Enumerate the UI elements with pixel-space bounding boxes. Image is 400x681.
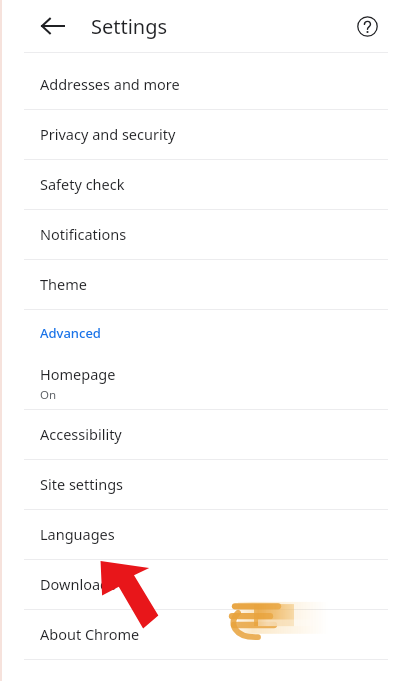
button[interactable]: Homepage: [0, 357, 400, 409]
staticText: Homepage: [40, 364, 116, 384]
staticText: Notifications: [40, 224, 127, 244]
button[interactable]: About Chrome: [0, 609, 400, 659]
button[interactable]: Privacy and security: [0, 109, 400, 159]
staticText: Theme: [40, 274, 87, 294]
button[interactable]: Notifications: [0, 209, 400, 259]
staticText: Languages: [40, 524, 115, 544]
button[interactable]: Languages: [0, 509, 400, 559]
button[interactable]: Site settings: [0, 459, 400, 509]
staticText: On: [40, 387, 57, 403]
staticText: Site settings: [40, 474, 124, 494]
button[interactable]: Safety check: [0, 159, 400, 209]
staticText: Accessibility: [40, 424, 122, 444]
button[interactable]: Help: [348, 7, 386, 45]
staticText: Advanced: [40, 324, 101, 342]
staticText: Addresses and more: [40, 74, 180, 94]
button[interactable]: Downloads: [0, 559, 400, 609]
staticText: About Chrome: [40, 624, 140, 644]
staticText: Privacy and security: [40, 124, 176, 144]
button[interactable]: Back: [35, 8, 71, 44]
button[interactable]: Accessibility: [0, 409, 400, 459]
button[interactable]: Addresses and more: [0, 59, 400, 109]
button[interactable]: Theme: [0, 259, 400, 309]
staticText: Safety check: [40, 174, 125, 194]
staticText: Downloads: [40, 574, 116, 594]
staticText: Settings: [91, 13, 168, 40]
